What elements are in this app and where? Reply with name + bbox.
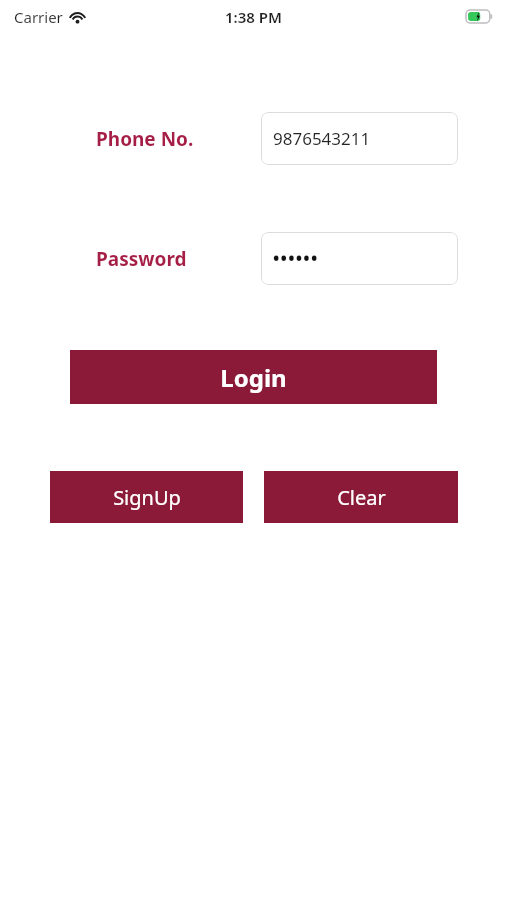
staticText: SignUp (113, 484, 181, 511)
staticText: Clear (337, 484, 386, 511)
button[interactable]: Login (70, 350, 437, 404)
staticText: Password (96, 246, 187, 272)
staticText: •••••• (273, 247, 319, 270)
staticText: 9876543211 (273, 127, 371, 150)
staticText: Login (220, 361, 287, 394)
staticText: Phone No. (96, 126, 194, 152)
button[interactable]: 9876543211 (261, 112, 458, 165)
button[interactable]: •••••• (261, 232, 458, 285)
button[interactable]: Clear (264, 471, 458, 523)
staticText: 1:38 PM (225, 7, 282, 27)
button[interactable]: SignUp (50, 471, 243, 523)
staticText: Carrier (14, 7, 63, 27)
